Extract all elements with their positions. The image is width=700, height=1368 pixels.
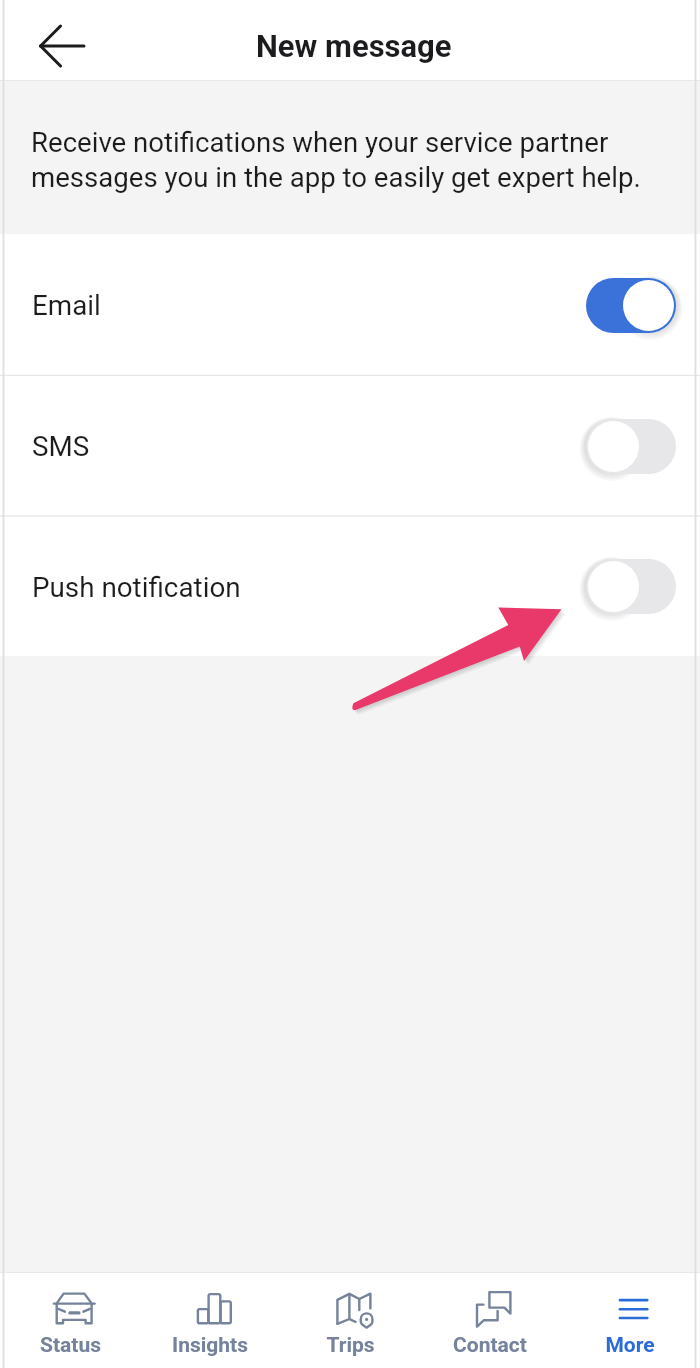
staticText: Contact (453, 1333, 527, 1358)
button[interactable]: More (560, 1273, 700, 1368)
staticText: Receive notifications when your service … (31, 126, 651, 193)
staticText: New message (256, 28, 452, 64)
staticText: Insights (172, 1333, 248, 1358)
staticText: Trips (326, 1333, 375, 1358)
button[interactable]: Contact (420, 1273, 560, 1368)
button[interactable]: Insights (140, 1273, 280, 1368)
button[interactable]: Back (26, 10, 98, 82)
staticText: SMS (32, 430, 90, 463)
staticText: Push notification (32, 571, 241, 604)
staticText: Status (40, 1333, 101, 1358)
button[interactable]: Push notification (0, 516, 700, 656)
button[interactable]: SMS (0, 375, 700, 516)
staticText: Email (32, 289, 101, 322)
button[interactable]: Email (0, 234, 700, 375)
staticText: More (605, 1333, 655, 1358)
button[interactable]: Status (0, 1273, 140, 1368)
button[interactable]: Trips (280, 1273, 420, 1368)
